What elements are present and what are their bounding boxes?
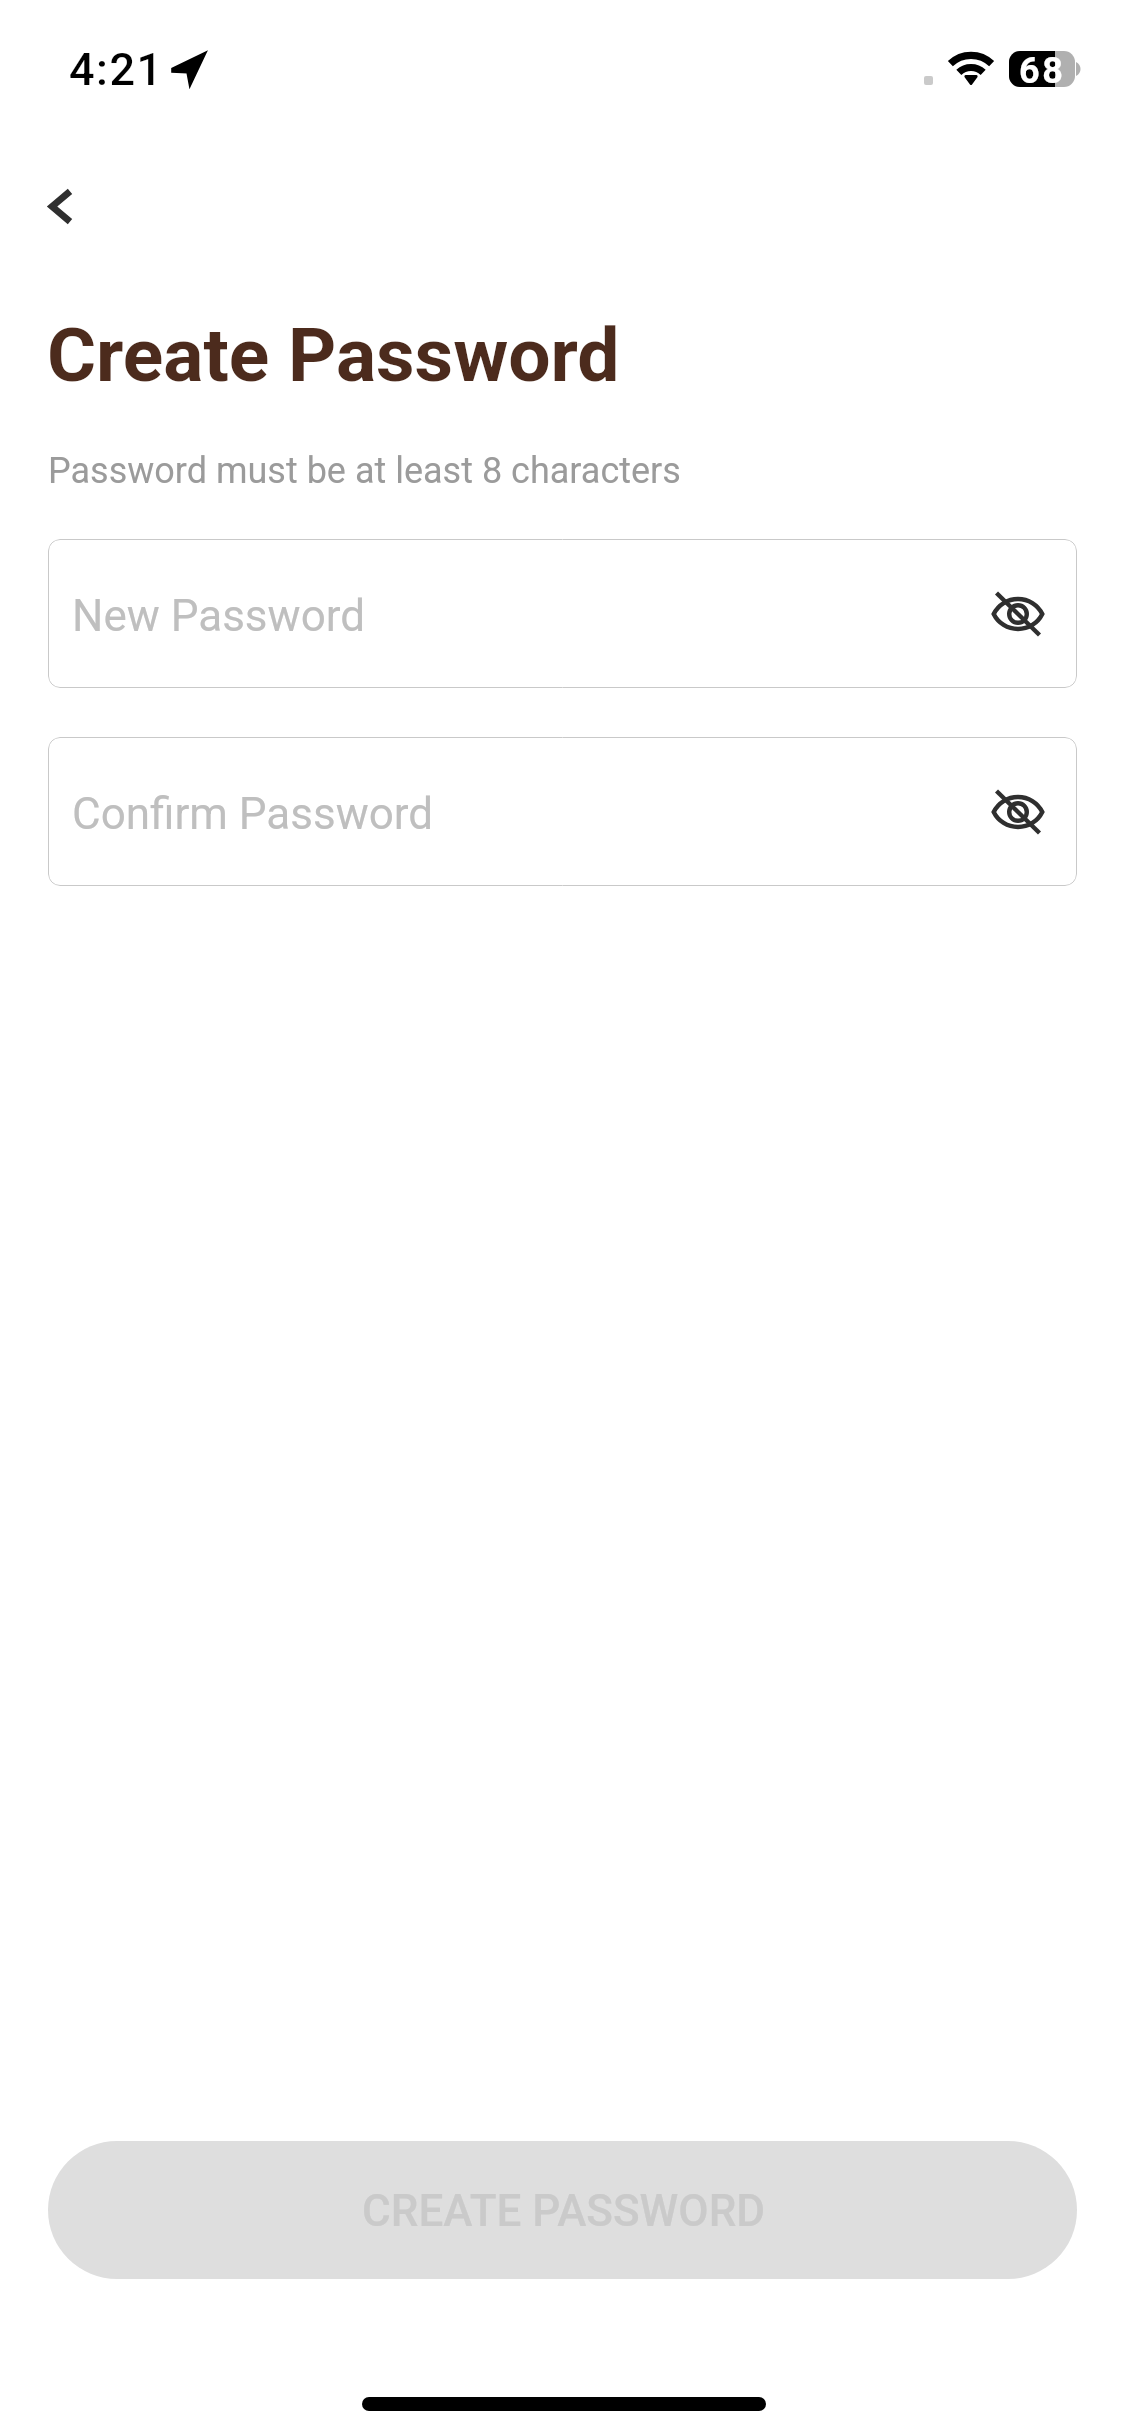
button[interactable]: Show password (958, 737, 1077, 886)
staticText: 4:21 (69, 43, 164, 96)
button[interactable]: New Password (48, 539, 1077, 688)
staticText: Create Password (47, 311, 620, 399)
button[interactable]: CREATE PASSWORD (48, 2141, 1077, 2279)
button[interactable]: Confirm Password (48, 737, 1077, 886)
button[interactable]: Show password (958, 539, 1077, 688)
staticText: Confirm Password (72, 788, 434, 840)
staticText: CREATE PASSWORD (362, 2185, 766, 2237)
button[interactable]: Back (6, 155, 112, 258)
staticText: 68 (1019, 51, 1066, 86)
staticText: New Password (72, 590, 366, 642)
staticText: Password must be at least 8 characters (48, 450, 681, 492)
